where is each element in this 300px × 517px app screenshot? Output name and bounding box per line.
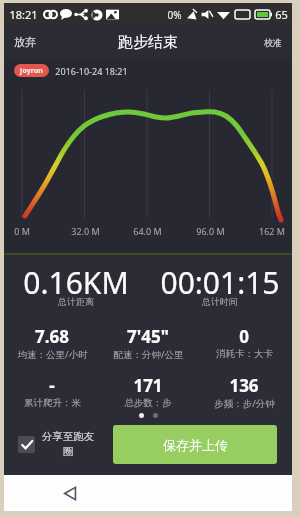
staticText: 跑步结束 [118, 33, 178, 52]
staticText: 64.0 M [133, 225, 162, 237]
staticText: 消耗卡：大卡 [216, 348, 273, 360]
staticText: 分享至跑友圈 [41, 430, 95, 458]
staticText: 0 M [14, 225, 30, 237]
staticText: 96.0 M [196, 225, 225, 237]
staticText: 放弃 [14, 35, 36, 49]
staticText: 00:01:15 [160, 262, 280, 303]
staticText: 7.68 [35, 325, 69, 348]
staticText: 171 [133, 374, 163, 397]
staticText: 总计时间 [202, 296, 238, 307]
button[interactable]: 分享至跑友圈 [4, 426, 101, 462]
staticText: 均速：公里/小时 [17, 348, 88, 361]
button[interactable]: Back [56, 479, 84, 507]
staticText: 7'45" [127, 325, 169, 348]
button[interactable]: 校准 [254, 30, 292, 55]
staticText: 2016-10-24 18:21 [55, 65, 128, 77]
button[interactable]: 保存并上传 [113, 425, 277, 464]
staticText: - [49, 374, 55, 397]
button[interactable]: 放弃 [4, 28, 46, 56]
staticText: 162 M [259, 225, 285, 237]
staticText: 32.0 M [71, 225, 100, 237]
staticText: 0% [167, 8, 182, 22]
staticText: Joyrun [20, 66, 43, 76]
staticText: 65 [275, 7, 288, 22]
staticText: 步频：步/分钟 [214, 397, 275, 410]
staticText: 累计爬升：米 [24, 397, 81, 409]
staticText: 136 [229, 374, 259, 397]
staticText: 保存并上传 [163, 437, 228, 453]
staticText: 总计距离 [58, 296, 94, 307]
staticText: 配速：分钟/公里 [113, 348, 184, 361]
staticText: 总步数：步 [124, 397, 172, 409]
staticText: 18:21 [9, 7, 38, 22]
staticText: 0.16KM [23, 262, 129, 303]
staticText: 校准 [264, 37, 282, 48]
staticText: 0 [239, 325, 249, 348]
